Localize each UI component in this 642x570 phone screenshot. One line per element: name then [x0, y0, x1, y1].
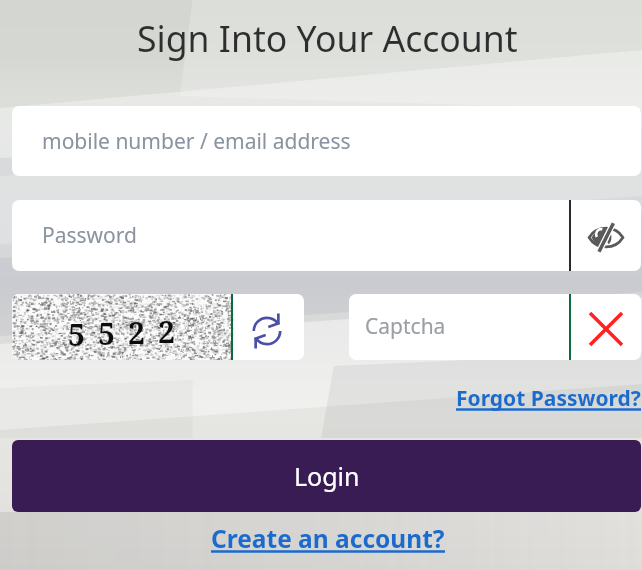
staticText: Forgot Password?: [456, 384, 641, 413]
staticText: 2: [158, 311, 175, 352]
staticText: Password: [42, 221, 137, 250]
staticText: 5: [68, 314, 85, 355]
staticText: 5: [98, 313, 115, 354]
staticText: Login: [294, 459, 360, 493]
button[interactable]: Login: [12, 440, 641, 512]
button[interactable]: Refresh captcha: [233, 294, 304, 360]
button[interactable]: Forgot Password?: [456, 384, 641, 413]
button[interactable]: mobile number / email address: [12, 106, 641, 176]
button[interactable]: Clear captcha: [571, 294, 641, 360]
button[interactable]: Captcha: [349, 294, 569, 360]
button[interactable]: Show password: [571, 200, 641, 271]
staticText: Create an account?: [211, 522, 445, 555]
staticText: 2: [128, 312, 145, 353]
button[interactable]: Password: [12, 200, 569, 271]
staticText: mobile number / email address: [42, 127, 351, 156]
button[interactable]: Create an account?: [211, 522, 445, 555]
staticText: Sign Into Your Account: [137, 14, 518, 62]
staticText: Captcha: [365, 312, 446, 341]
